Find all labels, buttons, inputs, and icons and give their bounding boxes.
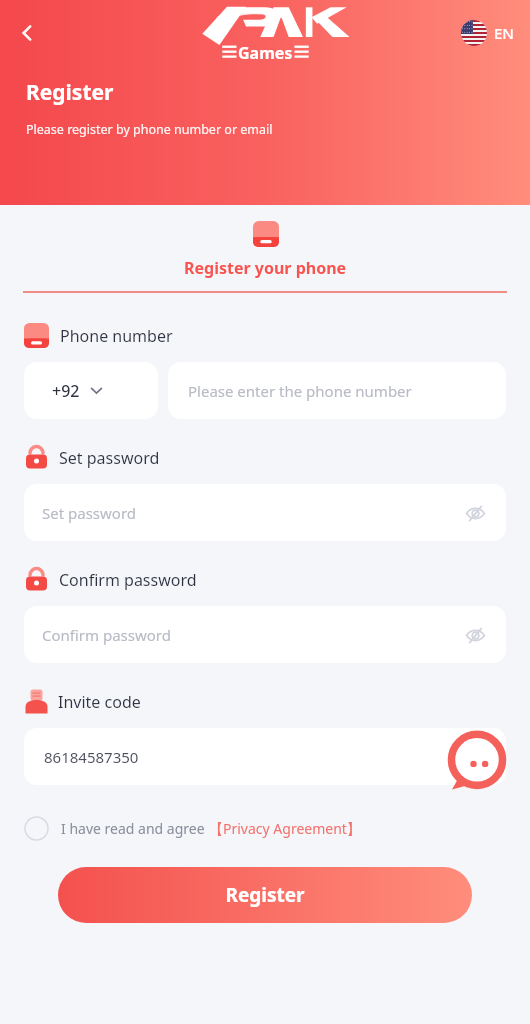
staticText: Register: [26, 78, 114, 107]
button[interactable]: 【Privacy Agreement】: [209, 819, 361, 838]
staticText: I have read and agree: [61, 819, 209, 838]
staticText: Games: [238, 42, 293, 64]
button[interactable]: EN: [455, 16, 520, 50]
staticText: +92: [52, 380, 80, 402]
staticText: EN: [494, 23, 514, 43]
button[interactable]: Inviter avatar: [446, 730, 508, 792]
button[interactable]: Register: [58, 867, 472, 923]
button[interactable]: 86184587350: [24, 728, 506, 785]
staticText: Confirm password: [42, 625, 462, 645]
staticText: Set password: [59, 447, 160, 469]
staticText: Please register by phone number or email: [26, 121, 273, 138]
button[interactable]: Register your phone: [166, 219, 365, 281]
staticText: Invite code: [58, 691, 141, 713]
button[interactable]: Set password: [24, 484, 506, 541]
staticText: 86184587350: [44, 747, 139, 767]
button[interactable]: Back: [6, 12, 48, 54]
button[interactable]: Show confirm password: [462, 622, 488, 648]
staticText: Register your phone: [184, 257, 347, 279]
staticText: Register: [225, 882, 305, 908]
staticText: Confirm password: [59, 569, 197, 591]
staticText: Set password: [42, 503, 462, 523]
button[interactable]: +92: [24, 362, 158, 419]
button[interactable]: Confirm password: [24, 606, 506, 663]
button[interactable]: I have read and agree: [24, 812, 506, 845]
button[interactable]: Please enter the phone number: [168, 362, 506, 419]
button[interactable]: Show password: [462, 500, 488, 526]
staticText: Phone number: [60, 325, 173, 347]
staticText: Please enter the phone number: [188, 381, 412, 401]
